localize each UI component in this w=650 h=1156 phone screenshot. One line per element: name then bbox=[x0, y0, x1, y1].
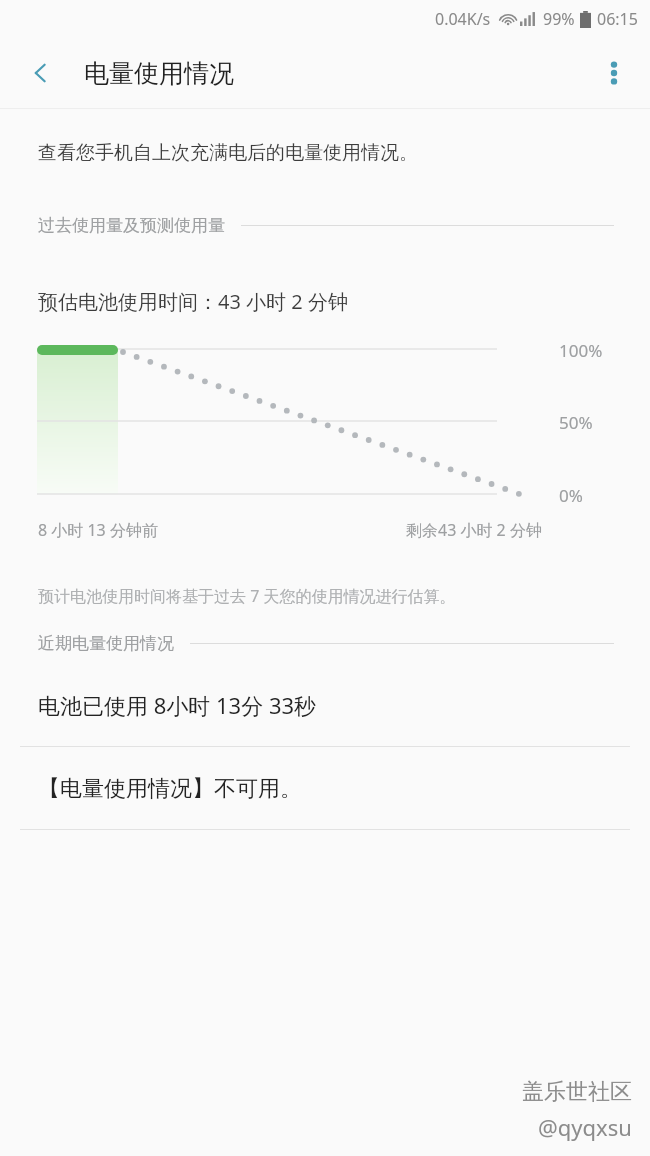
staticText: 100% bbox=[559, 339, 603, 362]
button[interactable]: More options bbox=[586, 45, 642, 101]
staticText: 电池已使用 8小时 13分 33秒 bbox=[38, 690, 317, 720]
staticText: 0.04K/s bbox=[435, 8, 491, 30]
button[interactable]: Back bbox=[12, 44, 70, 102]
button[interactable]: 【电量使用情况】不可用。 bbox=[0, 775, 650, 803]
staticText: 盖乐世社区 bbox=[522, 1078, 632, 1106]
staticText: @qyqxsu bbox=[538, 1112, 632, 1142]
staticText: 50% bbox=[559, 411, 593, 434]
staticText: 过去使用量及预测使用量 bbox=[38, 215, 225, 236]
staticText: 0% bbox=[559, 484, 583, 507]
staticText: 99% bbox=[543, 8, 575, 30]
staticText: 06:15 bbox=[597, 8, 638, 30]
staticText: 预计电池使用时间将基于过去 7 天您的使用情况进行估算。 bbox=[38, 585, 456, 607]
staticText: 查看您手机自上次充满电后的电量使用情况。 bbox=[38, 141, 418, 165]
staticText: 8 小时 13 分钟前 bbox=[38, 519, 158, 541]
staticText: 【电量使用情况】不可用。 bbox=[38, 775, 302, 803]
staticText: 预估电池使用时间：43 小时 2 分钟 bbox=[38, 288, 348, 315]
button[interactable]: 电池已使用 8小时 13分 33秒 bbox=[0, 690, 650, 720]
staticText: 近期电量使用情况 bbox=[38, 633, 174, 654]
staticText: 电量使用情况 bbox=[84, 58, 234, 89]
staticText: 剩余43 小时 2 分钟 bbox=[406, 519, 542, 541]
